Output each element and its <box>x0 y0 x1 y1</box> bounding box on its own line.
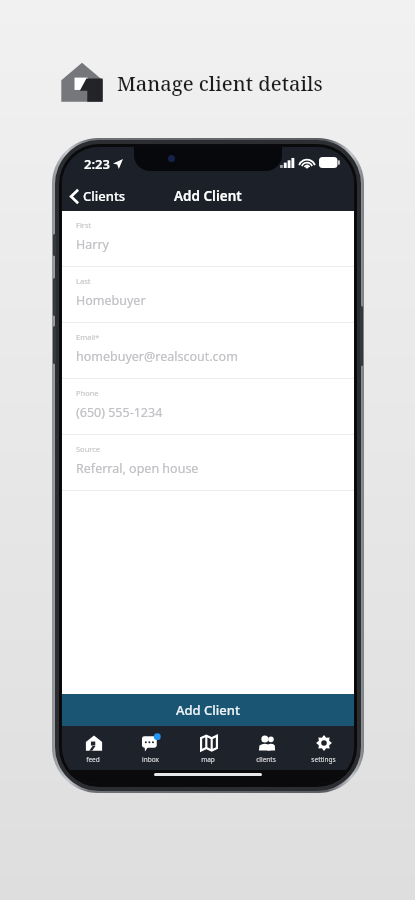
staticText: Referral, open house <box>76 460 199 477</box>
button[interactable]: map <box>181 726 235 770</box>
staticText: Last <box>76 276 91 286</box>
staticText: clients <box>256 755 276 764</box>
button[interactable]: Clients <box>70 187 126 205</box>
button[interactable]: Add Client <box>62 694 354 726</box>
staticText: settings <box>311 755 336 764</box>
staticText: Manage client details <box>117 70 323 97</box>
button[interactable]: inbox <box>123 726 177 770</box>
staticText: Email* <box>76 332 100 342</box>
button[interactable]: Source <box>62 435 354 490</box>
staticText: inbox <box>142 755 159 764</box>
button[interactable]: clients <box>239 726 293 770</box>
staticText: Add Client <box>174 187 242 205</box>
button[interactable]: Phone <box>62 379 354 434</box>
staticText: Clients <box>83 187 126 205</box>
button[interactable]: First <box>62 211 354 266</box>
staticText: First <box>76 220 92 230</box>
staticText: Homebuyer <box>76 292 146 309</box>
staticText: Add Client <box>176 701 240 719</box>
staticText: Phone <box>76 388 99 398</box>
button[interactable]: Last <box>62 267 354 322</box>
staticText: feed <box>86 755 100 764</box>
button[interactable]: feed <box>66 726 120 770</box>
staticText: (650) 555-1234 <box>76 404 163 421</box>
staticText: Source <box>76 444 101 454</box>
staticText: map <box>201 755 215 764</box>
button[interactable]: settings <box>296 726 350 770</box>
button[interactable]: Email* <box>62 323 354 378</box>
staticText: 2:23 <box>84 155 110 173</box>
staticText: Harry <box>76 236 109 253</box>
staticText: homebuyer@realscout.com <box>76 348 238 365</box>
